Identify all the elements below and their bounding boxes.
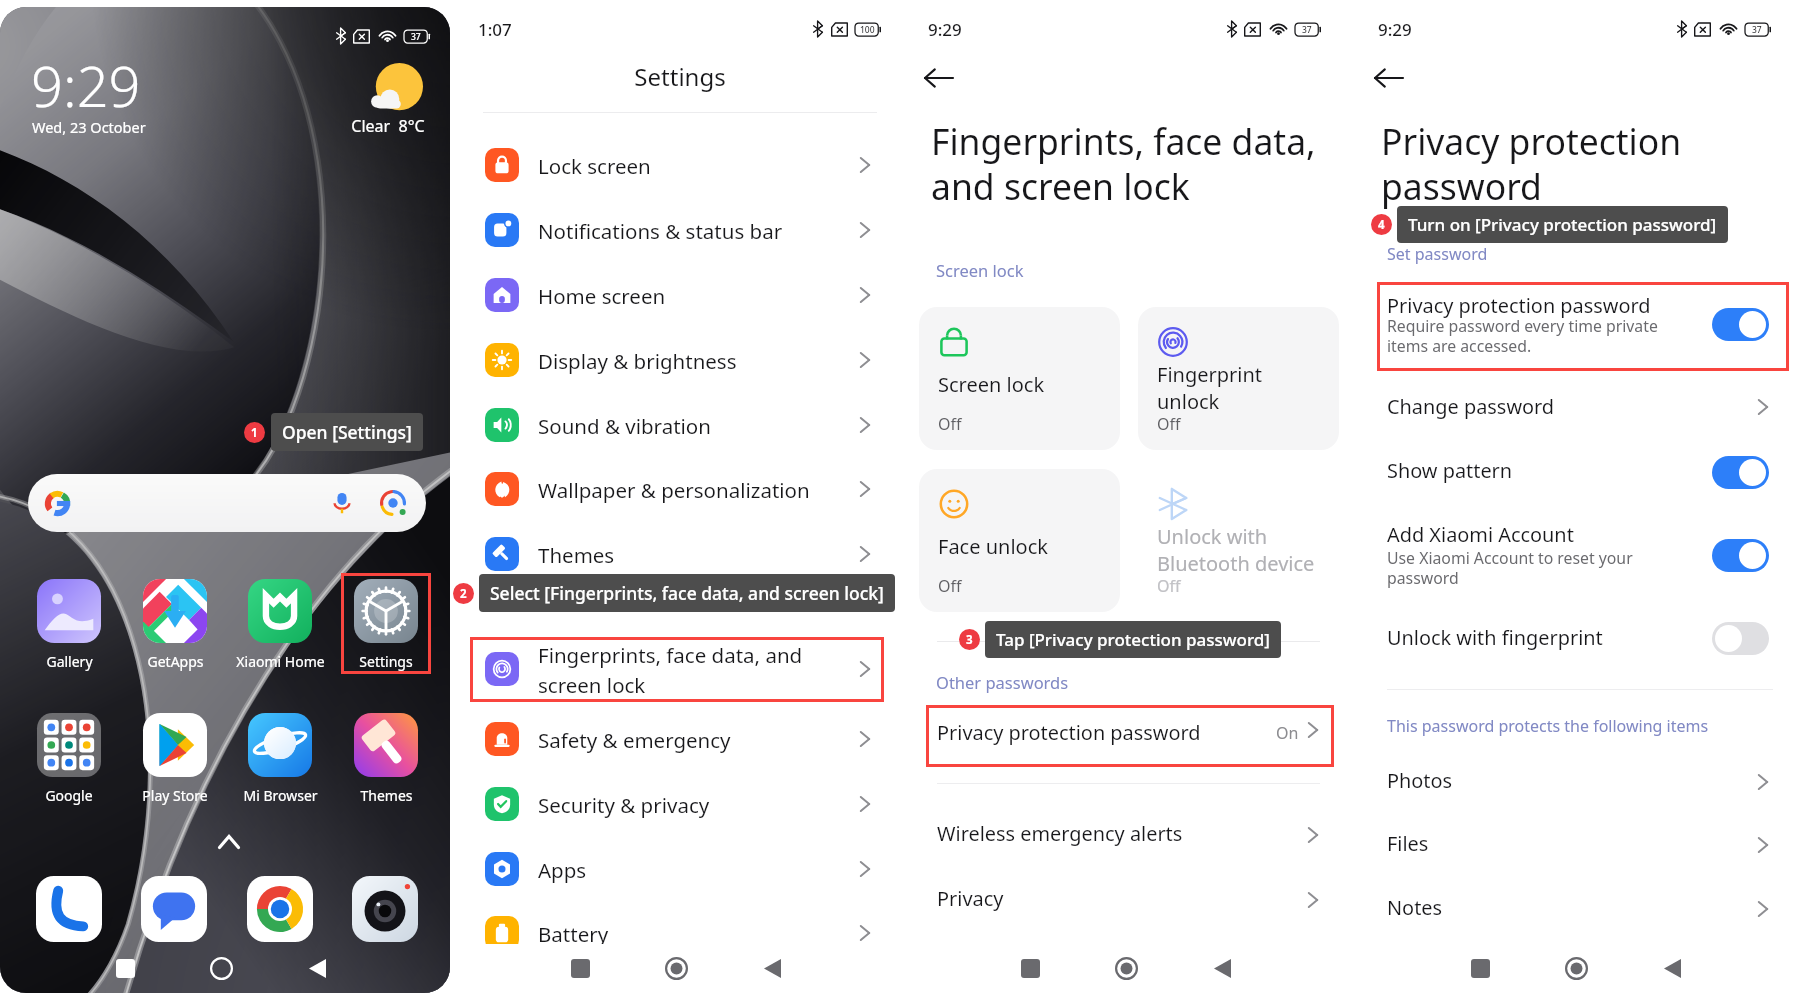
staticText: Privacy protection password	[937, 719, 1201, 746]
button[interactable]: Privacy protection password	[1355, 282, 1805, 371]
button[interactable]	[248, 713, 312, 777]
button[interactable]: Safety & emergency	[455, 707, 905, 771]
staticText: 9:29	[928, 18, 962, 41]
staticText: Face unlock	[938, 533, 1048, 560]
button[interactable]: Photos	[1355, 750, 1805, 812]
button[interactable]	[28, 474, 426, 532]
button[interactable]	[1138, 307, 1339, 450]
staticText: Sound & vibration	[538, 412, 711, 440]
button[interactable]: Home screen	[455, 263, 905, 327]
staticText: Fingerprint unlock	[1157, 361, 1263, 415]
button[interactable]: Switch on	[1712, 456, 1769, 489]
staticText: Play Store	[142, 786, 208, 805]
staticText: Safety & emergency	[538, 726, 731, 754]
button[interactable]: Camera	[352, 876, 418, 942]
staticText: Privacy protection password	[1381, 117, 1682, 210]
button[interactable]: Home	[1554, 946, 1598, 990]
button[interactable]	[143, 579, 207, 643]
staticText: Turn on [Privacy protection password]	[1408, 213, 1717, 236]
staticText: Notifications & status bar	[538, 217, 783, 245]
button[interactable]: Add Xiaomi Account	[1355, 508, 1805, 590]
staticText: 37	[411, 31, 421, 43]
staticText: Display & brightness	[538, 347, 737, 375]
staticText: Fingerprints, face data, and screen lock	[931, 117, 1316, 210]
button[interactable]: Battery	[455, 901, 905, 965]
staticText: Themes	[538, 541, 615, 569]
staticText: Off	[938, 413, 962, 435]
staticText: Screen lock	[938, 371, 1045, 398]
button[interactable]: Files	[1355, 813, 1805, 875]
button[interactable]	[354, 579, 418, 643]
button[interactable]: Home	[199, 946, 243, 990]
button[interactable]	[143, 713, 207, 777]
button[interactable]: Themes	[455, 522, 905, 586]
staticText: Mi Browser	[243, 786, 318, 805]
button[interactable]	[248, 579, 312, 643]
staticText: Google	[45, 786, 93, 805]
button[interactable]: Home	[654, 946, 698, 990]
button[interactable]: Notifications & status bar	[455, 198, 905, 262]
button[interactable]: Recents	[1008, 946, 1052, 990]
staticText: Add Xiaomi Account	[1387, 521, 1574, 548]
button[interactable]: Recents	[558, 946, 602, 990]
staticText: Require password every time private item…	[1387, 315, 1658, 357]
button[interactable]: Recents	[1458, 946, 1502, 990]
staticText: This password protects the following ite…	[1387, 715, 1709, 737]
staticText: Other passwords	[936, 671, 1069, 693]
button[interactable]	[354, 713, 418, 777]
staticText: 37	[1302, 24, 1312, 36]
button[interactable]: Change password	[1355, 376, 1805, 438]
staticText: Change password	[1387, 393, 1555, 420]
button[interactable]: Switch on	[1712, 308, 1769, 341]
button[interactable]: Display & brightness	[455, 328, 905, 392]
staticText: Gallery	[46, 652, 93, 671]
staticText: Wallpaper & personalization	[538, 476, 810, 504]
staticText: Privacy	[937, 885, 1004, 912]
button[interactable]: Messages	[141, 876, 207, 942]
button[interactable]: Fingerprints, face data, and screen lock	[455, 637, 905, 702]
staticText: 1	[251, 425, 258, 441]
button[interactable]: Back	[919, 58, 959, 98]
staticText: 2	[460, 586, 467, 602]
staticText: Photos	[1387, 767, 1453, 794]
staticText: Open [Settings]	[282, 420, 412, 444]
staticText: Wed, 23 October	[32, 117, 146, 137]
staticText: 100	[860, 24, 875, 36]
button[interactable]: Notes	[1355, 877, 1805, 939]
staticText: Fingerprints, face data, and screen lock	[538, 641, 803, 699]
staticText: Off	[1157, 575, 1181, 597]
button[interactable]: Phone	[36, 876, 102, 942]
button[interactable]: Lock screen	[455, 133, 905, 197]
button[interactable]: Back	[1650, 946, 1694, 990]
button[interactable]: Privacy protection password	[905, 705, 1355, 767]
button[interactable]: Wireless emergency alerts	[905, 805, 1355, 869]
button[interactable]: Chrome	[247, 876, 313, 942]
button[interactable]: Recents	[103, 946, 147, 990]
button[interactable]: Back	[295, 946, 339, 990]
staticText: 3	[966, 632, 973, 648]
staticText: Settings	[359, 652, 413, 671]
button[interactable]	[37, 713, 101, 777]
button[interactable]: Privacy	[905, 870, 1355, 934]
button[interactable]	[919, 469, 1120, 612]
button[interactable]: Home	[1104, 946, 1148, 990]
staticText: Security & privacy	[538, 791, 710, 819]
button[interactable]: Wallpaper & personalization	[455, 457, 905, 521]
button[interactable]: Back	[1369, 58, 1409, 98]
button[interactable]: Back	[750, 946, 794, 990]
button[interactable]: Show pattern	[1355, 441, 1805, 503]
button[interactable]	[919, 307, 1120, 450]
staticText: Wireless emergency alerts	[937, 820, 1183, 847]
button[interactable]	[1138, 469, 1339, 612]
button[interactable]: Apps	[455, 837, 905, 901]
button[interactable]: Switch on	[1712, 539, 1769, 572]
staticText: Battery	[538, 920, 609, 948]
button[interactable]	[37, 579, 101, 643]
button[interactable]: Back	[1200, 946, 1244, 990]
button[interactable]: Unlock with fingerprint	[1355, 606, 1805, 668]
button[interactable]: Switch off	[1712, 622, 1769, 655]
staticText: Unlock with Bluetooth device	[1157, 523, 1315, 577]
staticText: Lock screen	[538, 152, 651, 180]
button[interactable]: Security & privacy	[455, 772, 905, 836]
button[interactable]: Sound & vibration	[455, 393, 905, 457]
